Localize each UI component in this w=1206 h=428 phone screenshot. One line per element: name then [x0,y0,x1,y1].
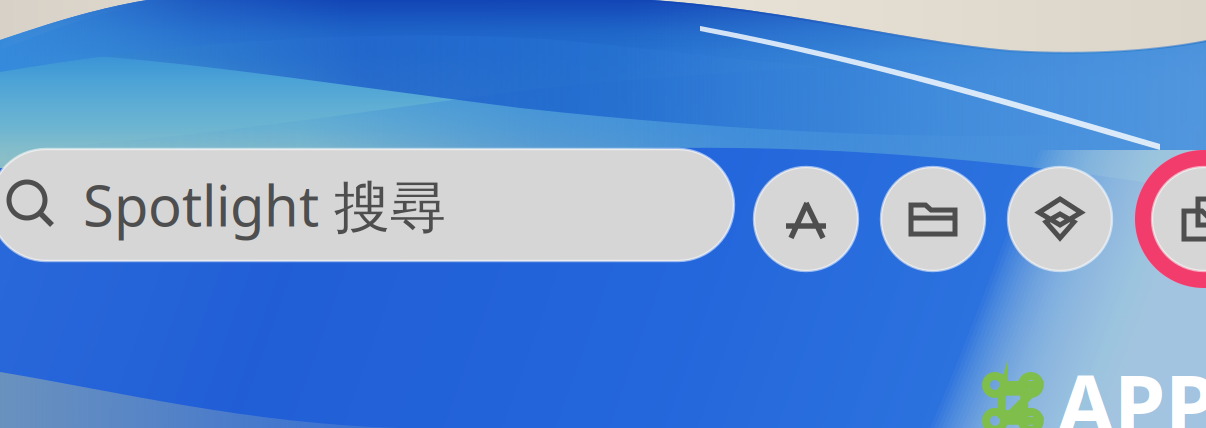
staticText: APPLE [1057,348,1206,428]
staticText: Spotlight 搜尋 [83,168,446,242]
button[interactable]: Files [881,150,985,288]
button[interactable]: App Store [754,150,858,288]
button[interactable]: Documents [1135,150,1206,288]
button[interactable]: Shortcuts [1008,150,1112,288]
button[interactable]: Spotlight 搜尋 [0,149,734,261]
